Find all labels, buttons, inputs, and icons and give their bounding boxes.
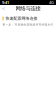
- staticText: 9:41: [2, 0, 9, 5]
- button[interactable]: Back: [2, 5, 5, 12]
- staticText: <: [2, 5, 5, 12]
- staticText: 第一步：开启路由器电源并等待指示灯: [2, 23, 53, 26]
- staticText: 快速配置网络连接: [5, 16, 37, 21]
- staticText: 4G: [49, 0, 54, 5]
- staticText: 网络与连接: [15, 5, 40, 12]
